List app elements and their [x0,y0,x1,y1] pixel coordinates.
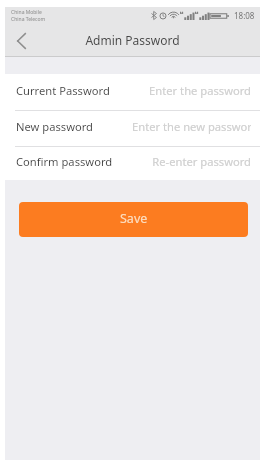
staticText: Confirm password [16,154,113,169]
button[interactable]: Save [19,202,248,237]
staticText: Admin Password [85,32,180,48]
staticText: New password [16,119,94,134]
staticText: Re-enter password [152,156,251,169]
button[interactable]: Current Password [5,74,260,110]
staticText: China Mobile [11,9,42,16]
button[interactable]: Back [5,24,38,57]
staticText: China Telecom [11,16,46,23]
button[interactable]: New password [5,111,260,146]
staticText: Current Password [16,83,110,98]
staticText: Enter the new password [132,121,251,134]
button[interactable]: Confirm password [5,147,260,180]
staticText: Enter the password [149,85,251,98]
staticText: Save [120,210,148,227]
staticText: 18:08 [234,10,255,21]
